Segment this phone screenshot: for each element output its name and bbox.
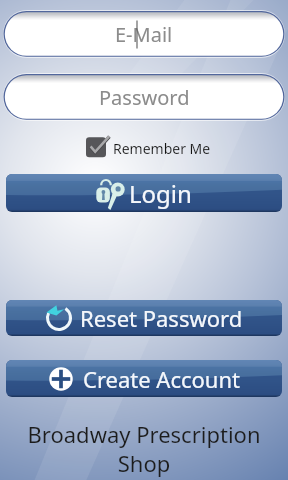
staticText: Remember Me — [113, 139, 211, 158]
button[interactable]: Login — [6, 174, 282, 212]
button[interactable]: Create Account — [6, 360, 282, 397]
button[interactable]: Reset Password — [6, 300, 282, 336]
staticText: Login — [129, 177, 192, 210]
button[interactable]: Remember Me — [86, 136, 211, 160]
other: Login — [96, 178, 125, 210]
staticText: Reset Password — [80, 303, 243, 333]
button[interactable]: E-Mail — [3, 10, 285, 58]
staticText: Create Account — [83, 364, 240, 394]
staticText: Password — [99, 84, 190, 111]
button[interactable]: Password — [3, 73, 285, 121]
staticText: Broadway Prescription Shop — [18, 419, 270, 478]
other: Create Account — [49, 367, 73, 391]
staticText: E-Mail — [115, 21, 173, 48]
other: Reset Password — [46, 305, 72, 331]
